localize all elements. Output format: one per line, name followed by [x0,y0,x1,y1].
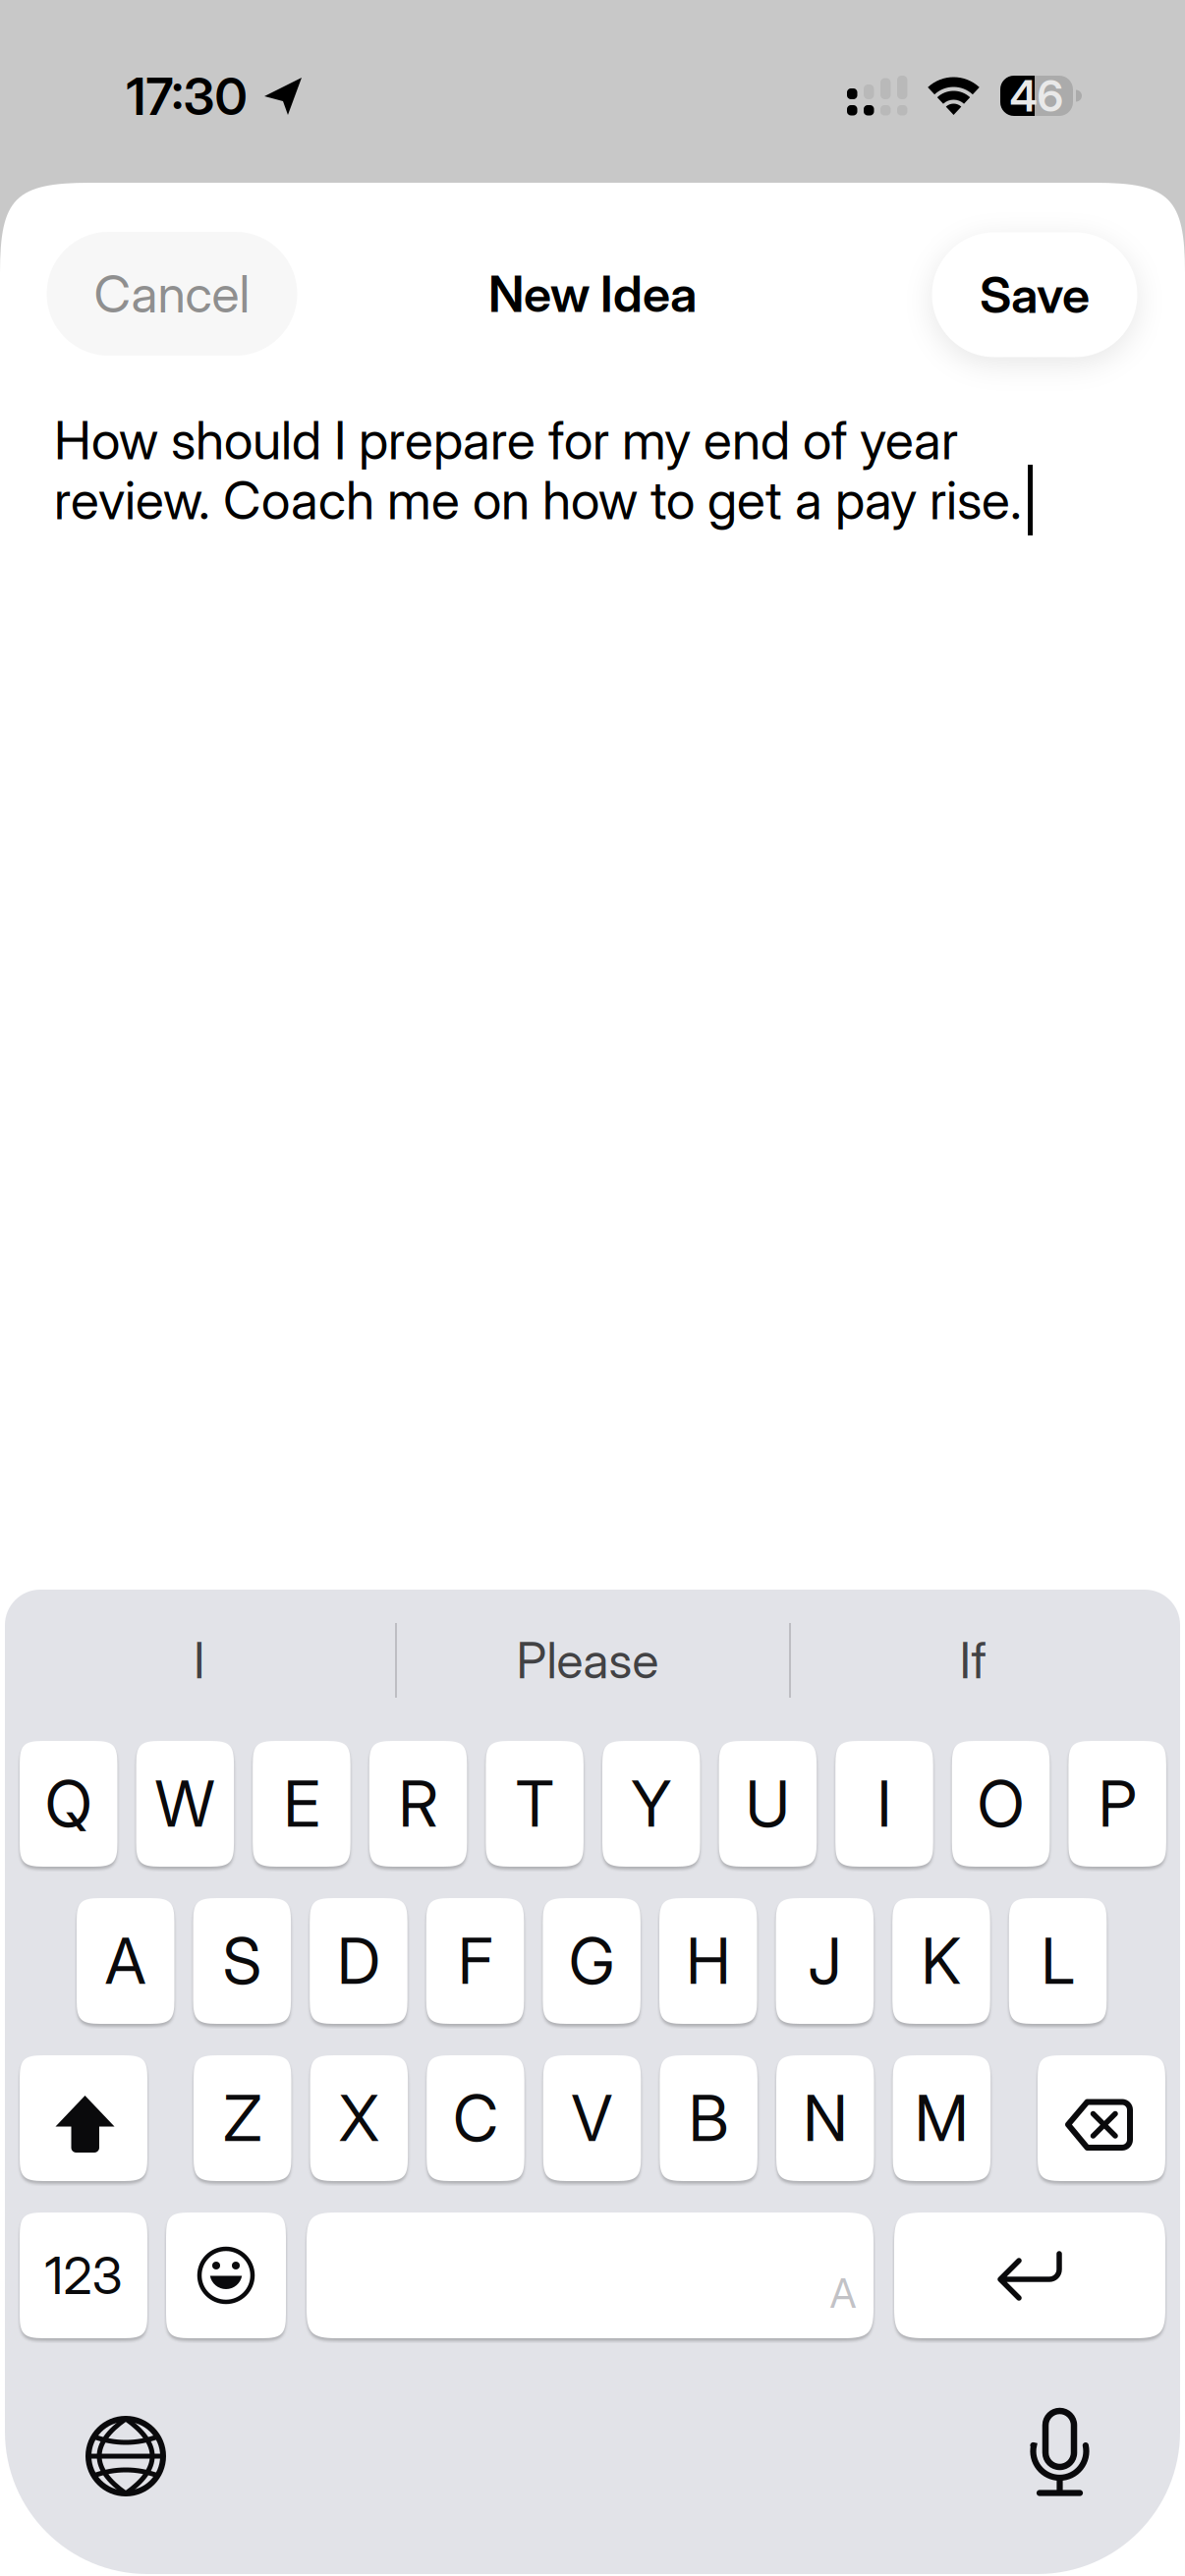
staticText: How should I prepare for my end of year [54,408,958,472]
staticText: U [746,1766,790,1842]
staticText: T [515,1766,554,1842]
staticText: I [877,1766,892,1842]
button[interactable]: A [77,1898,174,2024]
button[interactable]: L [1009,1898,1107,2024]
button[interactable]: X [310,2055,408,2181]
button[interactable] [0,0,1185,2576]
button[interactable]: S [193,1898,291,2024]
staticText: G [569,1923,615,1999]
staticText: O [977,1766,1024,1842]
staticText: F [458,1923,492,1999]
staticText: Save [980,265,1090,325]
staticText: E [283,1766,320,1842]
staticText: I [194,1631,205,1690]
staticText: W [155,1766,215,1842]
button[interactable]: W [136,1741,234,1867]
button[interactable]: R [369,1741,467,1867]
staticText: S [223,1923,261,1999]
staticText: A [105,1923,146,1999]
button[interactable]: V [543,2055,641,2181]
button[interactable]: If [786,1606,1159,1714]
staticText: N [803,2080,847,2156]
button[interactable]: C [427,2055,524,2181]
button[interactable]: I [835,1741,933,1867]
button[interactable]: H [659,1898,757,2024]
staticText: P [1098,1766,1136,1842]
button[interactable] [0,0,1185,2576]
button[interactable]: B [660,2055,757,2181]
button[interactable]: E [253,1741,350,1867]
button[interactable]: I [13,1606,386,1714]
button[interactable] [166,2212,286,2338]
button[interactable]: M [893,2055,991,2181]
button[interactable]: P [1068,1741,1166,1867]
button[interactable]: D [310,1898,407,2024]
button[interactable]: G [543,1898,641,2024]
staticText: Z [223,2080,262,2156]
staticText: review. Coach me on how to get a pay ris… [54,468,1022,532]
button[interactable]: O [952,1741,1050,1867]
staticText: 46 [1010,70,1064,122]
button[interactable]: F [426,1898,524,2024]
staticText: J [808,1923,841,1999]
button[interactable]: Y [602,1741,700,1867]
staticText: D [337,1923,380,1999]
staticText: Y [631,1766,671,1842]
button[interactable]: Z [194,2055,291,2181]
staticText: Cancel [94,263,250,325]
staticText: H [686,1923,730,1999]
staticText: If [959,1631,986,1690]
staticText: L [1041,1923,1074,1999]
button[interactable] [1038,2055,1165,2181]
staticText: New Idea [488,264,697,324]
button[interactable]: J [776,1898,874,2024]
button[interactable]: Cancel [47,232,297,356]
staticText: 17:30 [126,65,247,127]
button[interactable]: T [486,1741,584,1867]
button[interactable]: Please [401,1606,774,1714]
button[interactable]: Q [20,1741,117,1867]
staticText: Please [516,1631,659,1690]
staticText: 123 [45,2244,122,2306]
button[interactable]: K [892,1898,990,2024]
button[interactable] [894,2212,1165,2338]
button[interactable] [20,2212,147,2338]
staticText: R [398,1766,438,1842]
staticText: V [571,2080,613,2156]
button[interactable]: Save [932,232,1137,357]
staticText: X [339,2080,379,2156]
staticText: C [453,2080,498,2156]
staticText: Q [45,1766,92,1842]
button[interactable] [20,2055,147,2181]
button[interactable] [307,2212,874,2338]
staticText: M [915,2080,969,2156]
staticText: K [921,1923,961,1999]
button[interactable]: N [776,2055,874,2181]
button[interactable]: U [719,1741,817,1867]
staticText: B [688,2080,729,2156]
staticText: A [830,2268,856,2318]
